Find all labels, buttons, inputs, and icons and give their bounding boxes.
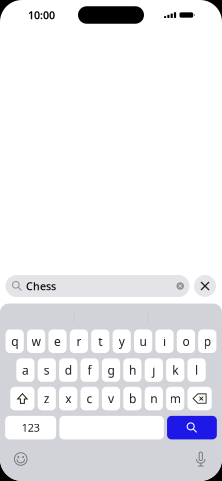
staticText: z — [44, 391, 50, 406]
button[interactable]: u — [134, 329, 152, 353]
staticText: j — [152, 362, 155, 378]
button[interactable]: r — [70, 329, 88, 353]
button[interactable]: e — [48, 329, 67, 353]
staticText: 10:00 — [28, 8, 55, 22]
staticText: a — [22, 362, 29, 378]
button[interactable]: m — [166, 387, 184, 410]
button[interactable]: space — [59, 416, 164, 439]
staticText: h — [129, 362, 136, 378]
button[interactable]: s — [38, 358, 56, 382]
staticText: k — [172, 362, 178, 378]
button[interactable]: l — [187, 358, 206, 382]
staticText: v — [108, 391, 114, 406]
button[interactable]: 123 — [5, 416, 56, 439]
staticText: n — [150, 391, 157, 406]
staticText: b — [129, 391, 136, 406]
button[interactable]: h — [123, 358, 141, 382]
button[interactable]: c — [80, 387, 99, 410]
staticText: s — [44, 362, 50, 378]
button[interactable]: f — [80, 358, 99, 382]
button[interactable]: Emoji — [8, 446, 33, 472]
button[interactable]: Shift — [10, 387, 34, 410]
staticText: 123 — [22, 421, 40, 435]
button[interactable]: i — [155, 329, 174, 353]
button[interactable]: Delete — [187, 387, 212, 410]
staticText: u — [140, 333, 147, 349]
staticText: m — [170, 391, 181, 406]
button[interactable]: v — [102, 387, 120, 410]
staticText: i — [163, 333, 166, 349]
button[interactable]: w — [27, 329, 45, 353]
button[interactable]: Chess — [5, 275, 189, 297]
staticText: l — [195, 362, 198, 378]
button[interactable]: z — [38, 387, 56, 410]
button[interactable]: g — [102, 358, 120, 382]
staticText: e — [54, 333, 61, 349]
staticText: f — [88, 362, 92, 378]
staticText: x — [65, 391, 71, 406]
button[interactable]: Dictation — [190, 446, 211, 472]
button[interactable]: n — [145, 387, 163, 410]
button[interactable]: q — [6, 329, 24, 353]
staticText: w — [32, 333, 41, 349]
staticText: d — [65, 362, 72, 378]
staticText: Chess — [26, 279, 56, 293]
button[interactable]: d — [59, 358, 77, 382]
button[interactable]: y — [113, 329, 131, 353]
button[interactable]: p — [198, 329, 216, 353]
button[interactable]: j — [145, 358, 163, 382]
button[interactable]: a — [16, 358, 34, 382]
button[interactable]: b — [123, 387, 141, 410]
button[interactable]: t — [91, 329, 109, 353]
button[interactable]: o — [177, 329, 195, 353]
staticText: o — [182, 333, 189, 349]
button[interactable]: Search — [167, 416, 217, 439]
staticText: r — [76, 333, 81, 349]
button[interactable]: x — [59, 387, 77, 410]
button[interactable]: k — [166, 358, 184, 382]
staticText: g — [107, 362, 114, 378]
staticText: q — [11, 333, 18, 349]
staticText: t — [98, 333, 102, 349]
staticText: p — [204, 333, 211, 349]
staticText: c — [87, 391, 93, 406]
button[interactable]: Cancel — [194, 275, 216, 297]
staticText: y — [119, 333, 125, 349]
